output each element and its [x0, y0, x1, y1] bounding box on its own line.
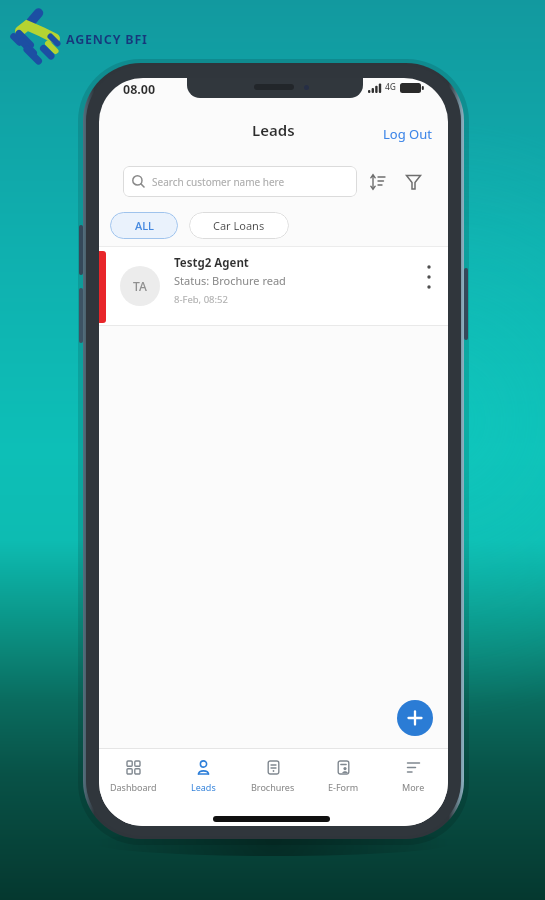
button[interactable]: [405, 174, 422, 191]
button[interactable]: Car Loans: [189, 212, 289, 239]
staticText: Testg2 Agent: [174, 255, 249, 271]
button[interactable]: [397, 700, 433, 736]
button[interactable]: TA: [99, 247, 448, 325]
staticText: AGENCY BFI: [66, 31, 148, 48]
button[interactable]: Dashboard: [99, 749, 168, 793]
staticText: 8-Feb, 08:52: [174, 293, 228, 306]
staticText: E-Form: [328, 781, 359, 793]
button[interactable]: Brochures: [238, 749, 308, 793]
button[interactable]: ALL: [110, 212, 178, 239]
staticText: Search customer name here: [152, 175, 285, 189]
button[interactable]: E-Form: [308, 749, 378, 793]
staticText: Status: Brochure read: [174, 273, 286, 288]
staticText: ALL: [135, 218, 154, 233]
staticText: 08.00: [123, 81, 156, 98]
staticText: Leads: [191, 781, 216, 793]
button[interactable]: Leads: [168, 749, 238, 793]
button[interactable]: [369, 173, 387, 191]
button[interactable]: [422, 261, 436, 293]
staticText: Log Out: [383, 125, 432, 143]
staticText: Leads: [252, 120, 295, 140]
staticText: TA: [133, 278, 147, 294]
button[interactable]: Search customer name here: [123, 166, 357, 197]
button[interactable]: More: [378, 749, 448, 793]
staticText: Car Loans: [213, 218, 265, 233]
staticText: More: [402, 781, 425, 793]
button[interactable]: Log Out: [379, 121, 436, 147]
staticText: 4G: [385, 81, 397, 93]
staticText: Dashboard: [110, 781, 157, 793]
staticText: Brochures: [251, 781, 295, 793]
